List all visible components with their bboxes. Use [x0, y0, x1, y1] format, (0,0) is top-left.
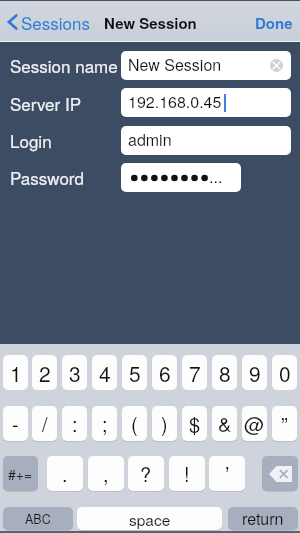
button[interactable]: ) [152, 406, 177, 441]
staticText: : [72, 409, 78, 438]
button[interactable]: & [212, 406, 237, 441]
staticText: ABC [25, 510, 51, 528]
staticText: admin [128, 128, 172, 151]
staticText: @ [244, 409, 265, 438]
staticText: ? [140, 459, 152, 488]
button[interactable]: 4 [92, 355, 117, 390]
staticText: return [242, 507, 284, 530]
staticText: ; [102, 409, 108, 438]
button[interactable]: space [77, 507, 222, 530]
staticText: 8 [219, 358, 231, 388]
staticText: ’ [225, 459, 230, 488]
button[interactable]: / [32, 406, 57, 441]
staticText: / [42, 409, 48, 438]
button[interactable]: @ [242, 406, 267, 441]
button[interactable]: ? [128, 456, 164, 491]
staticText: 0 [279, 358, 291, 388]
staticText: 3 [69, 358, 81, 388]
button[interactable]: , [88, 456, 124, 491]
staticText: $ [189, 409, 201, 438]
button[interactable]: 1 [3, 355, 28, 390]
staticText: 7 [189, 358, 201, 388]
staticText: 1 [10, 358, 22, 388]
staticText: Sessions [21, 10, 90, 34]
button[interactable]: - [3, 406, 28, 441]
staticText: ... [209, 165, 223, 188]
staticText: #+= [8, 464, 33, 484]
button[interactable]: ... [121, 163, 241, 192]
staticText: space [129, 508, 171, 530]
button[interactable]: 5 [122, 355, 147, 390]
button[interactable]: Backspace [262, 456, 298, 491]
staticText: ( [131, 409, 138, 438]
button[interactable]: Password [10, 165, 84, 189]
staticText: 6 [159, 358, 171, 388]
button[interactable]: ; [92, 406, 117, 441]
staticText: Done [255, 12, 293, 33]
button[interactable]: : [62, 406, 87, 441]
staticText: 4 [99, 358, 111, 388]
button[interactable]: 7 [182, 355, 207, 390]
button[interactable]: 3 [62, 355, 87, 390]
button[interactable]: Login [10, 128, 52, 152]
staticText: 192.168.0.45 [128, 90, 222, 113]
button[interactable]: . [47, 456, 83, 491]
button[interactable]: 8 [212, 355, 237, 390]
button[interactable]: 2 [32, 355, 57, 390]
button[interactable]: return [228, 507, 298, 530]
button[interactable]: 0 [272, 355, 297, 390]
button[interactable]: 9 [242, 355, 267, 390]
button[interactable]: ( [122, 406, 147, 441]
button[interactable]: Done [255, 12, 293, 33]
staticText: ) [161, 409, 168, 438]
staticText: ” [281, 409, 288, 438]
staticText: , [103, 459, 109, 488]
button[interactable]: $ [182, 406, 207, 441]
staticText: New Session [128, 53, 222, 76]
button[interactable]: ’ [209, 456, 245, 491]
button[interactable]: ” [272, 406, 297, 441]
button[interactable]: Session name [10, 53, 118, 77]
staticText: New Session [104, 12, 197, 33]
button[interactable]: 192.168.0.45 [121, 88, 291, 117]
staticText: & [218, 409, 232, 438]
button[interactable]: Server IP [10, 91, 82, 115]
button[interactable]: New Session [121, 51, 291, 80]
button[interactable]: admin [121, 126, 291, 155]
button[interactable]: 6 [152, 355, 177, 390]
staticText: 5 [129, 358, 141, 388]
button[interactable]: ! [169, 456, 205, 491]
button[interactable]: #+= [3, 456, 38, 491]
button[interactable]: ABC [3, 507, 73, 530]
staticText: . [62, 459, 68, 488]
button[interactable]: Sessions [8, 10, 90, 34]
staticText: - [12, 409, 19, 438]
staticText: 2 [39, 358, 51, 388]
staticText: 9 [249, 358, 261, 388]
button[interactable]: Clear text [270, 59, 283, 72]
staticText: ! [184, 459, 190, 488]
